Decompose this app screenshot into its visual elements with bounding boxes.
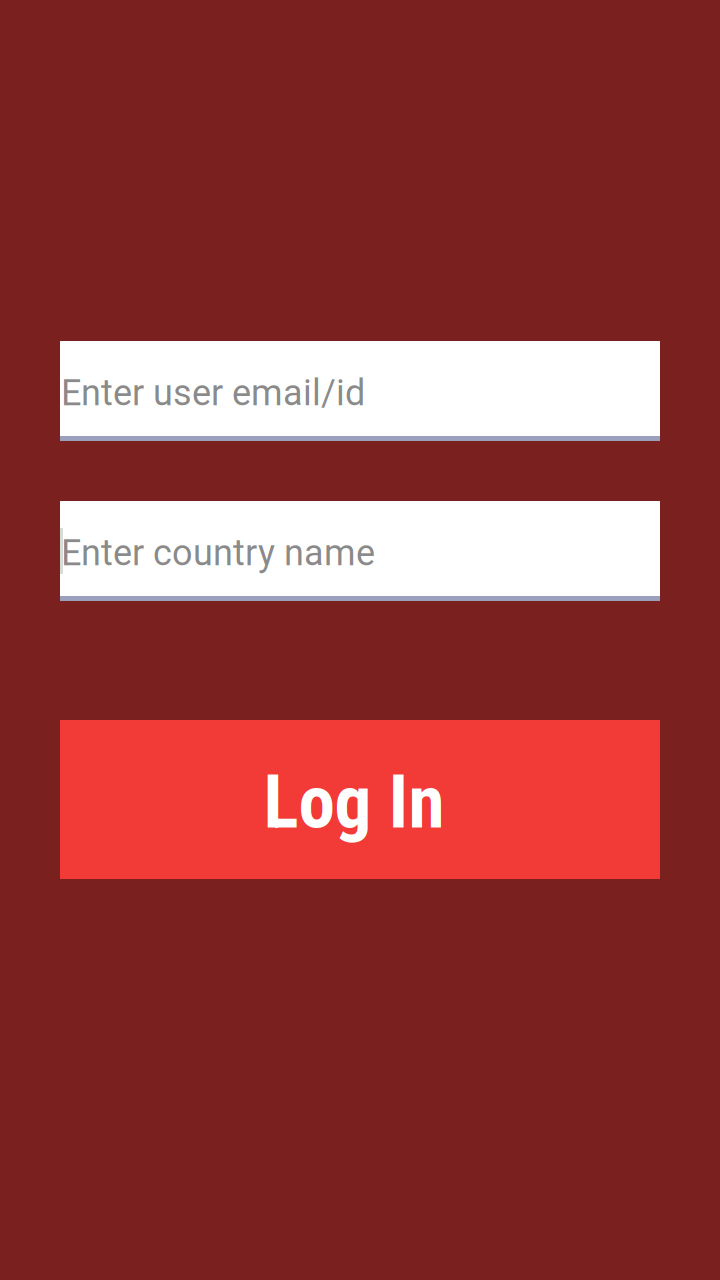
- staticText: Enter country name: [61, 532, 375, 574]
- button[interactable]: Enter country name: [60, 501, 660, 601]
- button[interactable]: Log In: [60, 720, 660, 879]
- staticText: Log In: [263, 759, 444, 845]
- button[interactable]: Enter user email/id: [60, 341, 660, 441]
- staticText: Enter user email/id: [61, 372, 365, 414]
